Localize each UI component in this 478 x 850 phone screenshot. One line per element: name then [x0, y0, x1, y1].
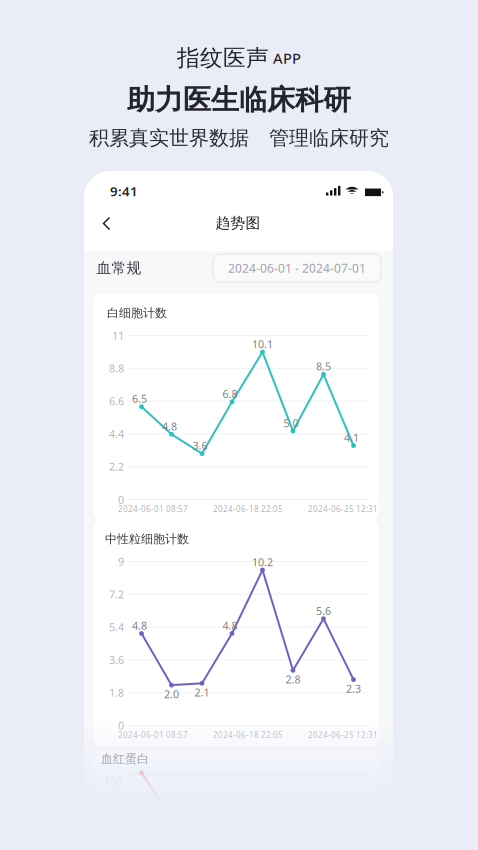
- staticText: 7.2: [109, 587, 124, 601]
- staticText: 2024-06-18 22:05: [213, 730, 283, 740]
- staticText: 0: [118, 718, 124, 733]
- staticText: 2.3: [346, 681, 361, 696]
- staticText: 4.4: [109, 427, 124, 441]
- staticText: 3.6: [192, 439, 207, 453]
- staticText: 130: [104, 774, 122, 788]
- staticText: 2024-06-25 12:31: [308, 730, 378, 740]
- staticText: 9: [118, 554, 124, 569]
- staticText: 8.5: [316, 359, 331, 373]
- staticText: 中性粒细胞计数: [105, 532, 189, 546]
- staticText: 白细胞计数: [107, 306, 167, 320]
- staticText: 9:41: [110, 182, 138, 200]
- staticText: 8.8: [109, 361, 124, 375]
- staticText: 2024-06-01 08:57: [118, 504, 188, 514]
- staticText: 4.8: [222, 618, 237, 633]
- staticText: 2024-06-01 - 2024-07-01: [228, 260, 366, 276]
- staticText: 5.0: [283, 416, 298, 430]
- staticText: 6.8: [222, 387, 237, 401]
- staticText: 4.1: [344, 430, 359, 445]
- staticText: 积累真实世界数据 管理临床研究: [89, 126, 389, 150]
- button[interactable]: Back: [90, 206, 124, 240]
- staticText: 2024-06-01 08:57: [118, 730, 188, 740]
- staticText: 0: [118, 492, 124, 507]
- staticText: 6.6: [109, 394, 124, 408]
- staticText: 5.4: [109, 620, 124, 634]
- button[interactable]: 2024-06-01 - 2024-07-01: [213, 254, 381, 282]
- staticText: 血红蛋白: [101, 752, 149, 766]
- staticText: APP: [273, 48, 301, 68]
- staticText: 2024-06-25 12:31: [308, 504, 378, 514]
- staticText: 10.2: [252, 555, 273, 569]
- staticText: 2.2: [109, 460, 124, 474]
- staticText: 助力医生临床科研: [127, 83, 351, 117]
- staticText: 1.8: [109, 686, 124, 700]
- staticText: 2024-06-18 22:05: [213, 504, 283, 514]
- staticText: 2.1: [194, 685, 209, 699]
- staticText: 血常规: [96, 259, 141, 277]
- staticText: 4.8: [132, 618, 147, 633]
- staticText: 10.1: [252, 337, 273, 351]
- staticText: 4.8: [162, 419, 177, 433]
- staticText: 趋势图: [215, 214, 260, 232]
- staticText: 3.6: [109, 653, 124, 667]
- staticText: 5.6: [316, 604, 331, 618]
- staticText: 6.5: [132, 392, 147, 406]
- staticText: 2.0: [164, 687, 179, 701]
- staticText: 指纹医声: [177, 44, 269, 72]
- staticText: 11: [112, 328, 124, 343]
- staticText: 2.8: [285, 672, 300, 686]
